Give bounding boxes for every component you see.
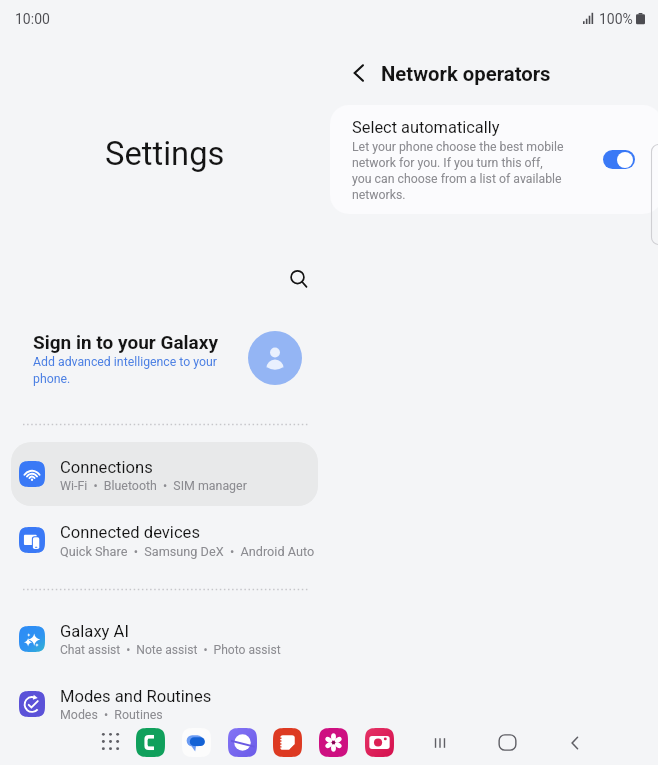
staticText: Modes and Routines	[60, 686, 212, 707]
staticText: Network operators	[381, 61, 551, 86]
staticText: Connections	[60, 457, 153, 478]
staticText: Modes • Routines	[60, 707, 163, 723]
staticText: Wi-Fi • Bluetooth • SIM manager	[60, 478, 247, 494]
button[interactable]: Sign in to your Galaxy	[11, 322, 318, 394]
button[interactable]: Phone	[136, 728, 165, 757]
button[interactable]: Modes and Routines	[11, 677, 318, 733]
button[interactable]: Gallery	[319, 728, 348, 757]
button[interactable]: All apps	[95, 726, 125, 756]
staticText: Select automatically	[352, 117, 500, 138]
button[interactable]: Connected devices	[11, 508, 318, 564]
staticText: Quick Share • Samsung DeX • Android Auto	[60, 543, 315, 559]
button[interactable]: Messages	[182, 728, 211, 757]
button[interactable]: Recents	[424, 727, 455, 758]
button[interactable]: Search	[279, 259, 316, 296]
staticText: Let your phone choose the best mobile ne…	[352, 138, 564, 202]
staticText: Sign in to your Galaxy	[33, 330, 219, 354]
staticText: Galaxy AI	[60, 621, 129, 642]
staticText: 100%	[599, 10, 633, 28]
button[interactable]: Connections	[11, 442, 318, 506]
staticText: Connected devices	[60, 522, 200, 543]
staticText: Chat assist • Note assist • Photo assist	[60, 642, 281, 657]
staticText: Add advanced intelligence to your phone.	[33, 353, 218, 387]
button[interactable]: Select automatically	[603, 150, 635, 169]
button[interactable]: Home	[492, 727, 523, 758]
staticText: Settings	[105, 133, 225, 174]
button[interactable]: Camera	[365, 728, 394, 757]
button[interactable]: Back	[559, 727, 590, 758]
button[interactable]: Back	[340, 54, 378, 92]
button[interactable]: Galaxy AI	[11, 608, 318, 664]
staticText: 10:00	[15, 10, 50, 28]
button[interactable]: Notes	[273, 728, 302, 757]
button[interactable]: Internet	[228, 728, 257, 757]
